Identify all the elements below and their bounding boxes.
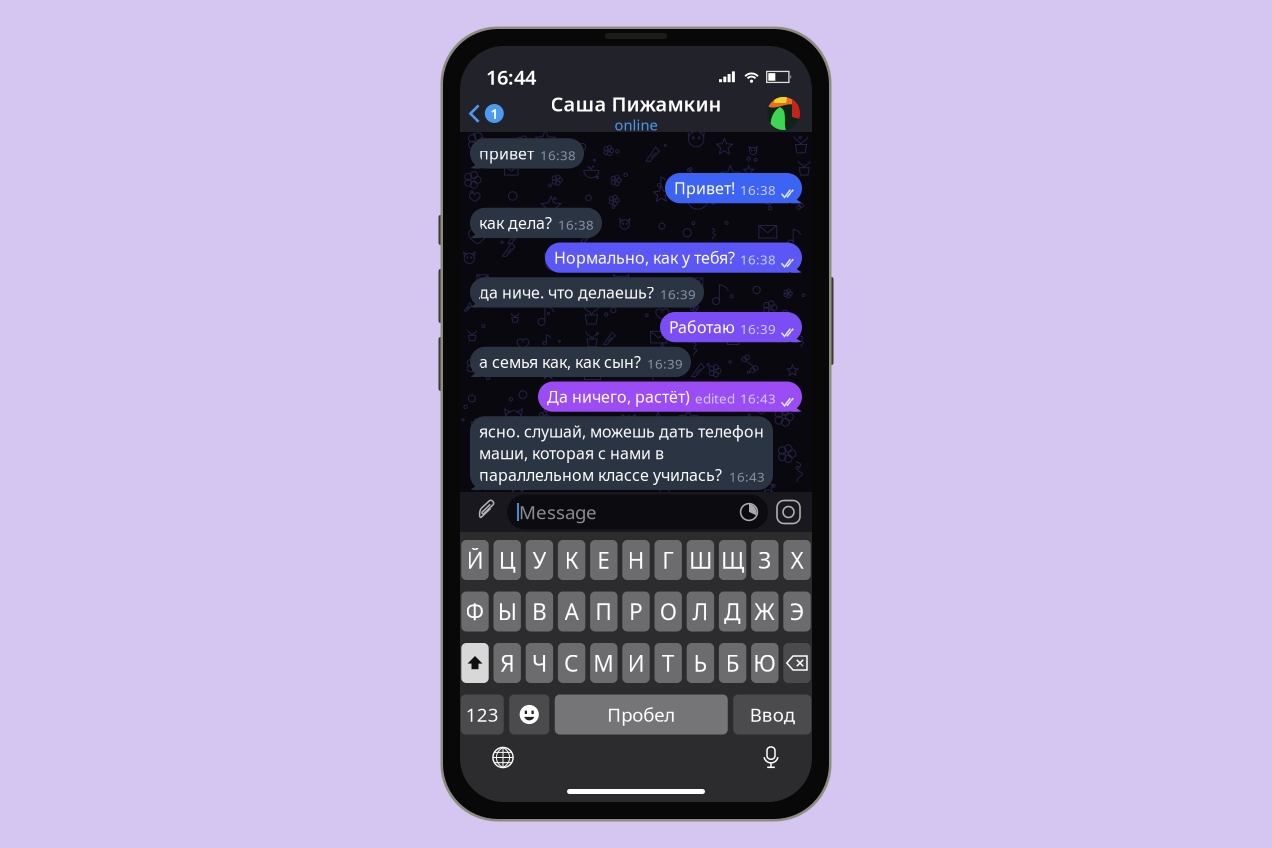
button[interactable]: С bbox=[558, 643, 585, 683]
button[interactable]: М bbox=[590, 643, 617, 683]
button[interactable]: Ввод bbox=[733, 694, 811, 734]
staticText: привет bbox=[479, 143, 534, 164]
staticText: Message bbox=[519, 500, 597, 524]
staticText: ясно. слушай, можешь дать телефон bbox=[479, 421, 764, 442]
staticText: П bbox=[595, 596, 612, 626]
button[interactable]: Т bbox=[654, 643, 682, 683]
button[interactable]: Пробел bbox=[555, 694, 728, 734]
staticText: Ю bbox=[753, 648, 776, 678]
button[interactable]: Х bbox=[783, 540, 811, 580]
staticText: Ц bbox=[499, 545, 516, 575]
staticText: Й bbox=[466, 545, 483, 575]
staticText: Привет! bbox=[674, 177, 735, 199]
staticText: параллельном классе училась? bbox=[479, 464, 722, 485]
staticText: Х bbox=[790, 545, 803, 575]
staticText: 16:39 bbox=[660, 285, 696, 303]
button[interactable]: Profile bbox=[767, 97, 800, 130]
button[interactable]: Ю bbox=[751, 643, 778, 683]
button[interactable]: Backspace bbox=[783, 643, 811, 683]
staticText: К bbox=[565, 545, 579, 575]
button[interactable]: В bbox=[526, 591, 553, 631]
button[interactable]: Emoji bbox=[509, 694, 549, 734]
button[interactable]: Ж bbox=[751, 591, 778, 631]
staticText: edited bbox=[695, 389, 735, 407]
staticText: online bbox=[614, 115, 657, 134]
button[interactable]: Ь bbox=[687, 643, 714, 683]
staticText: Ф bbox=[465, 596, 484, 626]
button[interactable]: Г bbox=[654, 540, 682, 580]
button[interactable]: Ф bbox=[461, 591, 489, 631]
staticText: Ь bbox=[693, 648, 707, 678]
staticText: Пробел bbox=[607, 702, 675, 727]
staticText: Я bbox=[500, 648, 514, 678]
staticText: 16:38 bbox=[740, 181, 776, 199]
button[interactable]: О bbox=[654, 591, 682, 631]
staticText: 16:38 bbox=[740, 251, 776, 268]
button[interactable]: А bbox=[558, 591, 585, 631]
staticText: 16:44 bbox=[486, 64, 536, 90]
button[interactable]: Л bbox=[687, 591, 714, 631]
button[interactable]: Dictate bbox=[762, 746, 780, 768]
staticText: Ч bbox=[532, 648, 547, 678]
staticText: Ы bbox=[498, 596, 517, 626]
button[interactable]: Attach bbox=[470, 501, 500, 523]
button[interactable]: Я bbox=[493, 643, 521, 683]
staticText: Д bbox=[724, 596, 741, 626]
staticText: Т bbox=[662, 648, 675, 678]
staticText: Б bbox=[726, 648, 740, 678]
button[interactable]: Ч bbox=[526, 643, 553, 683]
button[interactable]: 123 bbox=[461, 694, 504, 734]
staticText: М bbox=[593, 648, 614, 678]
staticText: Работаю bbox=[669, 316, 735, 338]
button[interactable]: К bbox=[558, 540, 585, 580]
staticText: Нормально, как у тебя? bbox=[554, 247, 735, 268]
staticText: Р bbox=[629, 596, 643, 626]
staticText: 16:38 bbox=[558, 216, 594, 233]
staticText: Н bbox=[627, 545, 644, 575]
staticText: 123 bbox=[466, 702, 499, 727]
staticText: В bbox=[532, 596, 547, 626]
staticText: 16:38 bbox=[540, 146, 576, 164]
button[interactable]: Р bbox=[622, 591, 650, 631]
staticText: Е bbox=[597, 545, 610, 575]
button[interactable]: Н bbox=[622, 540, 650, 580]
button[interactable]: Ш bbox=[687, 540, 714, 580]
button[interactable]: Й bbox=[461, 540, 489, 580]
staticText: Г bbox=[662, 545, 674, 575]
staticText: да ниче. что делаешь? bbox=[479, 282, 654, 303]
button[interactable]: Message bbox=[507, 494, 768, 529]
button[interactable]: Change keyboard bbox=[492, 746, 514, 768]
staticText: У bbox=[532, 545, 546, 575]
staticText: 16:39 bbox=[647, 355, 683, 372]
staticText: Ш bbox=[689, 545, 712, 575]
staticText: Да ничего, растёт) bbox=[547, 386, 690, 407]
button[interactable]: Shift bbox=[461, 643, 489, 683]
staticText: С bbox=[564, 648, 579, 678]
staticText: 16:39 bbox=[740, 320, 776, 338]
staticText: З bbox=[758, 545, 771, 575]
button[interactable]: 1 bbox=[463, 99, 510, 128]
button[interactable]: У bbox=[526, 540, 553, 580]
staticText: Ввод bbox=[750, 702, 795, 727]
staticText: 1 bbox=[490, 104, 498, 123]
staticText: 16:43 bbox=[729, 468, 765, 485]
button[interactable]: Б bbox=[719, 643, 746, 683]
staticText: Саша Пижамкин bbox=[550, 90, 721, 117]
staticText: маши, которая с нами в bbox=[479, 442, 664, 464]
staticText: 16:43 bbox=[740, 389, 776, 407]
staticText: Щ bbox=[721, 545, 744, 575]
button[interactable]: З bbox=[751, 540, 778, 580]
button[interactable]: Е bbox=[590, 540, 617, 580]
button[interactable]: Ы bbox=[493, 591, 521, 631]
button[interactable]: Э bbox=[783, 591, 811, 631]
button[interactable]: И bbox=[622, 643, 650, 683]
staticText: А bbox=[565, 596, 579, 626]
button[interactable]: Д bbox=[719, 591, 746, 631]
button[interactable]: П bbox=[590, 591, 617, 631]
button[interactable]: Ц bbox=[493, 540, 521, 580]
button[interactable]: Camera bbox=[777, 500, 800, 523]
staticText: как дела? bbox=[479, 212, 552, 233]
button[interactable]: Щ bbox=[719, 540, 746, 580]
staticText: О bbox=[660, 596, 677, 626]
staticText: Э bbox=[789, 596, 804, 626]
